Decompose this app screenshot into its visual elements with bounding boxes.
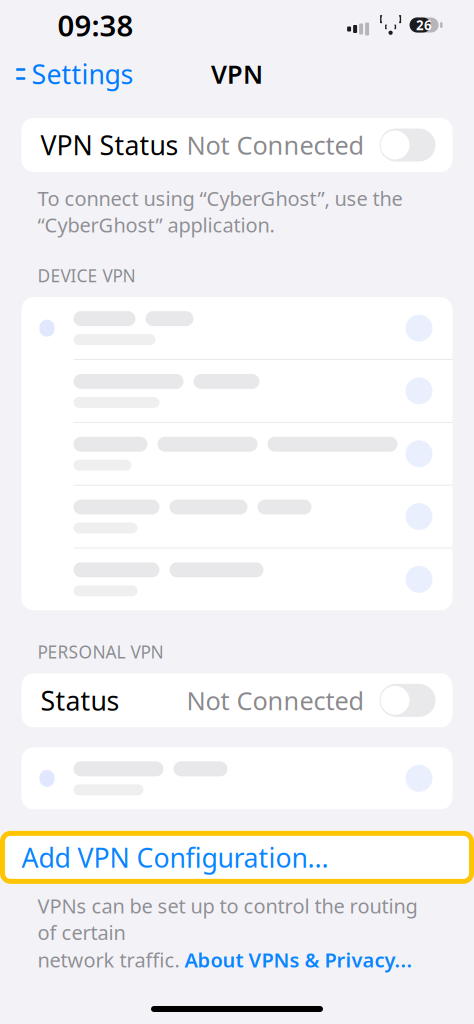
staticText: About VPNs & Privacy... <box>184 946 412 973</box>
staticText: Settings <box>31 56 133 92</box>
staticText: Not Connected <box>186 128 364 162</box>
staticText: Status <box>40 683 119 718</box>
staticText: VPN <box>211 57 263 91</box>
button[interactable]: VPN configuration <box>21 485 452 547</box>
staticText: 09:38 <box>57 5 133 44</box>
button[interactable]: VPN configuration <box>21 297 452 359</box>
staticText: PERSONAL VPN <box>37 640 163 663</box>
button[interactable]: VPN Status <box>21 118 452 172</box>
button[interactable]: VPN configuration <box>21 423 452 485</box>
staticText: Add VPN Configuration... <box>21 840 328 875</box>
button[interactable]: VPN configuration <box>21 360 452 422</box>
button[interactable]: Settings <box>0 48 143 100</box>
staticText: 26 <box>416 16 432 34</box>
button[interactable]: About VPNs & Privacy... <box>184 946 412 973</box>
button[interactable]: VPN configuration <box>21 747 452 809</box>
staticText: DEVICE VPN <box>37 264 135 287</box>
staticText: VPN Status <box>40 127 178 163</box>
staticText: network traffic. <box>37 946 179 973</box>
staticText: Not Connected <box>186 683 364 717</box>
staticText: VPNs can be set up to control the routin… <box>37 892 417 945</box>
staticText: To connect using “CyberGhost”, use the “… <box>37 185 402 238</box>
button[interactable]: Status <box>21 673 452 727</box>
button[interactable]: VPN configuration <box>21 548 452 610</box>
button[interactable]: Add VPN Configuration... <box>0 833 474 881</box>
